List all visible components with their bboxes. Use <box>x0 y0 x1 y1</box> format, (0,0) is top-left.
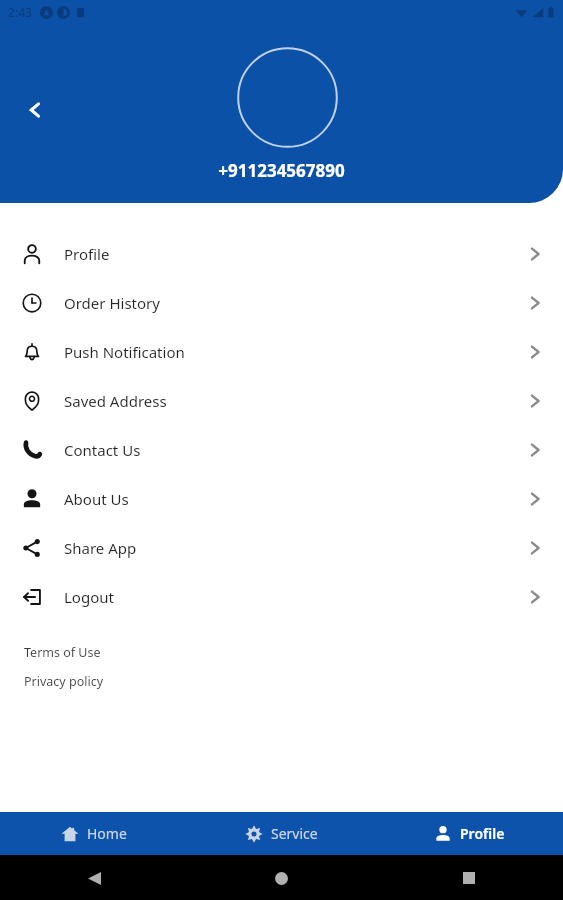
button[interactable]: Recent apps <box>454 863 484 893</box>
staticText: Profile <box>460 824 505 843</box>
staticText: 2:43 <box>8 4 32 20</box>
button[interactable]: Home <box>266 863 296 893</box>
button[interactable]: Back <box>79 863 109 893</box>
button[interactable]: Logout <box>0 572 563 621</box>
button[interactable]: Service <box>187 812 375 855</box>
staticText: Order History <box>64 293 160 313</box>
staticText: About Us <box>64 489 129 509</box>
button[interactable]: Push Notification <box>0 327 563 376</box>
staticText: Terms of Use <box>24 644 101 661</box>
staticText: Logout <box>64 587 114 607</box>
button[interactable]: Privacy policy <box>24 673 104 690</box>
staticText: Profile <box>64 244 110 264</box>
button[interactable]: Contact Us <box>0 425 563 474</box>
button[interactable]: Profile <box>375 812 563 855</box>
staticText: +911234567890 <box>0 159 563 182</box>
staticText: Push Notification <box>64 342 185 362</box>
button[interactable]: Terms of Use <box>24 644 101 661</box>
staticText: Contact Us <box>64 440 141 460</box>
button[interactable]: Home <box>0 812 187 855</box>
button[interactable]: About Us <box>0 474 563 523</box>
staticText: Home <box>87 824 127 843</box>
button[interactable]: Share App <box>0 523 563 572</box>
staticText: Privacy policy <box>24 673 104 690</box>
button[interactable]: Back <box>17 92 53 128</box>
button[interactable]: Order History <box>0 278 563 327</box>
button[interactable]: Saved Address <box>0 376 563 425</box>
staticText: Saved Address <box>64 391 167 411</box>
button[interactable]: Profile <box>0 229 563 278</box>
staticText: Share App <box>64 538 137 558</box>
staticText: Service <box>271 824 318 843</box>
button[interactable]: Profile photo <box>237 47 338 148</box>
